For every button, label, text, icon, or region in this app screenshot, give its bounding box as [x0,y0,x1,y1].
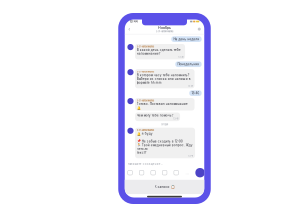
staticText: сегодня [161,123,168,126]
staticText: Выбери из списка или напиши в [137,77,191,81]
staticText: 13:38 [178,56,183,58]
staticText: Понедельник [177,62,199,66]
staticText: 13:40 [191,91,199,95]
staticText: 📌 Не забыв сходить в 12:00 [137,139,183,143]
staticText: К записи 📋 [154,185,174,189]
staticText: 13:40 [173,117,178,120]
staticText: В какой день сделать тебе [137,48,181,52]
staticText: 🔔 я буду [137,132,153,135]
staticText: формате hh:mm [137,81,162,84]
staticText: текст? [137,151,147,154]
staticText: На день недели [173,37,199,41]
staticText: ‹ [128,26,130,32]
staticText: В котором часу тебе напомнить? [137,73,190,77]
staticText: Напишите сообщение… [128,162,163,166]
staticText: 10:44 [130,20,138,23]
staticText: 13:39 [188,85,193,87]
staticText: 13:41 [188,155,193,157]
staticText: Чем могу тебе помочь? [137,114,174,117]
staticText: Бот-напоминалка [137,45,154,48]
staticText: Бот-напоминалка [156,30,173,33]
staticText: Бот-напоминалка [137,129,154,132]
staticText: Бот-напоминалка [137,99,154,102]
staticText: Бот-напоминалка [137,70,154,73]
staticText: напоминание? [137,52,161,56]
staticText: Ноябрь [158,25,171,30]
staticText: 🏃 Твой ежедневный вопрос. Жду чего-то [137,143,193,151]
staticText: Готово. Поставил напоминание 🔔 [137,102,188,109]
